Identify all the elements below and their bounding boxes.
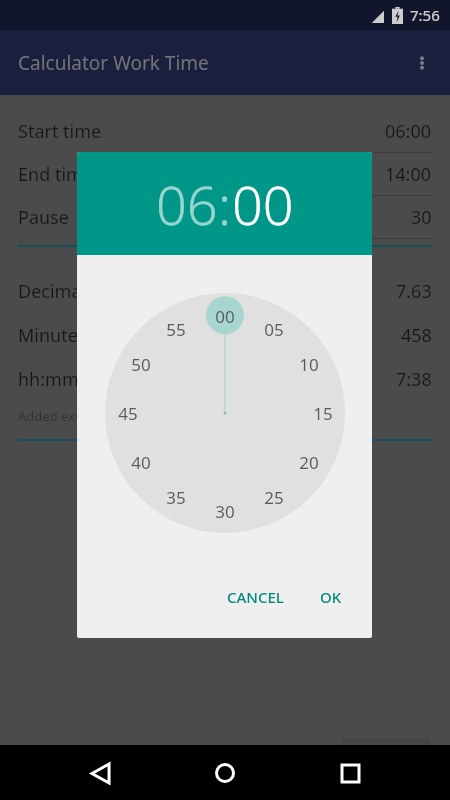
button[interactable]: CANCEL <box>215 579 296 615</box>
staticText: Decimal <box>18 279 87 304</box>
staticText: CANCEL <box>227 587 284 607</box>
staticText: 40 <box>131 451 151 474</box>
staticText: Calculator Work Time <box>18 50 209 76</box>
button[interactable]: 00 <box>232 167 294 241</box>
staticText: 7:56 <box>410 5 440 25</box>
staticText: hh:mm <box>18 367 79 392</box>
button[interactable]: 06 <box>156 167 218 241</box>
button[interactable]: Back <box>75 748 125 798</box>
staticText: 05 <box>264 318 284 341</box>
staticText: 7.63 <box>396 279 432 304</box>
staticText: Pause <box>18 205 69 230</box>
staticText: 00 <box>215 305 235 328</box>
staticText: 14:00 <box>385 162 432 187</box>
staticText: 7:38 <box>396 367 432 392</box>
staticText: : <box>218 167 232 241</box>
staticText: Start time <box>18 119 102 144</box>
button[interactable]: End time <box>0 153 450 196</box>
staticText: 06:00 <box>385 119 432 144</box>
staticText: 50 <box>131 353 151 376</box>
staticText: Minutes <box>18 323 87 348</box>
staticText: 20 <box>299 451 319 474</box>
staticText: OK <box>320 587 342 607</box>
button[interactable]: OK <box>308 579 354 615</box>
staticText: Added extra time <box>18 407 123 425</box>
staticText: 55 <box>166 318 186 341</box>
button[interactable]: Start time <box>0 110 450 153</box>
button[interactable]: More options <box>400 41 444 85</box>
button[interactable]: QUIT <box>341 738 430 778</box>
staticText: End time <box>18 162 94 187</box>
staticText: 10 <box>299 353 319 376</box>
button[interactable]: Recents <box>325 748 375 798</box>
button[interactable] <box>105 293 345 533</box>
staticText: 45 <box>118 402 138 425</box>
staticText: 25 <box>264 486 284 509</box>
button[interactable]: Home <box>200 748 250 798</box>
staticText: 30 <box>215 500 235 523</box>
staticText: 15 <box>313 402 333 425</box>
button[interactable]: Pause <box>0 196 450 239</box>
staticText: 35 <box>166 486 186 509</box>
staticText: 30 <box>411 205 432 230</box>
staticText: 458 <box>401 323 432 348</box>
